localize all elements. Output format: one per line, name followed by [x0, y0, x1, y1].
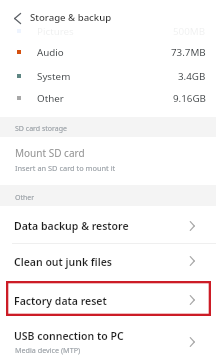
button[interactable]: System	[0, 65, 216, 88]
staticText: Pictures	[37, 25, 74, 38]
staticText: System	[37, 70, 71, 83]
staticText: Storage & backup	[30, 11, 112, 24]
button[interactable]: Clean out junk files	[0, 244, 216, 279]
button[interactable]: Other	[0, 87, 216, 110]
staticText: Data backup & restore	[14, 219, 129, 233]
button[interactable]: Factory data reset	[0, 279, 216, 316]
staticText: 3.4GB	[178, 70, 206, 83]
button[interactable]: Pictures	[0, 20, 216, 43]
staticText: Insert an SD card to mount it	[15, 163, 116, 173]
button[interactable]: Audio	[0, 41, 216, 64]
staticText: SD card storage	[15, 124, 67, 134]
button[interactable]: Mount SD card	[0, 137, 216, 185]
staticText: 9.16GB	[173, 92, 206, 105]
staticText: 500MB	[173, 25, 206, 38]
staticText: USB connection to PC	[14, 329, 124, 343]
staticText: Media device (MTP)	[15, 345, 81, 355]
staticText: Other	[15, 193, 35, 203]
staticText: Audio	[37, 46, 64, 59]
staticText: Mount SD card	[15, 146, 85, 160]
staticText: Other	[37, 92, 64, 105]
button[interactable]: Back	[7, 8, 28, 29]
staticText: Clean out junk files	[14, 255, 112, 269]
button[interactable]: USB connection to PC	[0, 316, 216, 357]
button[interactable]: Data backup & restore	[0, 206, 216, 243]
staticText: Factory data reset	[14, 294, 107, 308]
staticText: 73.7MB	[171, 46, 206, 59]
